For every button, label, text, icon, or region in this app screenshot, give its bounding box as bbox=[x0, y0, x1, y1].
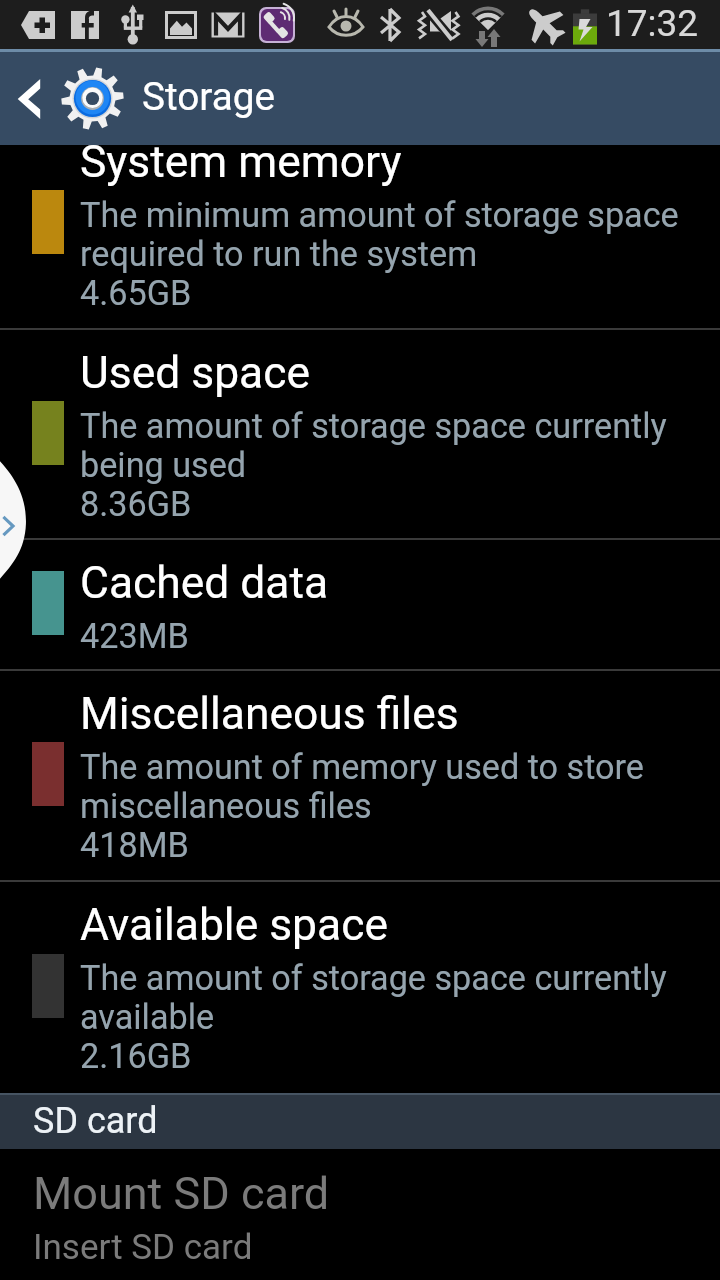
button[interactable]: Open side panel bbox=[0, 455, 27, 583]
button[interactable]: Used space bbox=[0, 330, 720, 538]
button[interactable]: SD card bbox=[0, 1093, 720, 1149]
button[interactable]: System memory bbox=[0, 145, 720, 328]
staticText: required to run the system bbox=[80, 234, 478, 274]
staticText: Miscellaneous files bbox=[80, 688, 459, 740]
button[interactable]: Miscellaneous files bbox=[0, 671, 720, 880]
staticText: Cached data bbox=[80, 557, 329, 609]
button[interactable]: Navigate up bbox=[0, 52, 58, 145]
staticText: available bbox=[80, 997, 215, 1037]
staticText: Used space bbox=[80, 347, 311, 399]
staticText: 8.36GB bbox=[80, 484, 192, 524]
staticText: miscellaneous files bbox=[80, 786, 372, 826]
staticText: 423MB bbox=[80, 616, 189, 656]
staticText: The amount of storage space currently bbox=[80, 958, 667, 998]
staticText: System memory bbox=[80, 136, 402, 188]
staticText: 418MB bbox=[80, 825, 189, 865]
staticText: Available space bbox=[80, 899, 388, 951]
staticText: The minimum amount of storage space bbox=[80, 195, 679, 235]
staticText: The amount of memory used to store bbox=[80, 747, 644, 787]
button[interactable]: Available space bbox=[0, 882, 720, 1093]
staticText: being used bbox=[80, 445, 247, 485]
staticText: 4.65GB bbox=[80, 273, 192, 313]
staticText: SD card bbox=[33, 1100, 158, 1142]
staticText: Storage bbox=[142, 74, 275, 119]
staticText: 2.16GB bbox=[80, 1036, 192, 1076]
button[interactable]: Mount SD card bbox=[0, 1149, 720, 1280]
staticText: The amount of storage space currently bbox=[80, 406, 667, 446]
button[interactable]: Cached data bbox=[0, 540, 720, 669]
staticText: Mount SD card bbox=[33, 1167, 330, 1220]
staticText: Insert SD card bbox=[33, 1227, 253, 1268]
staticText: 17:32 bbox=[606, 2, 699, 45]
